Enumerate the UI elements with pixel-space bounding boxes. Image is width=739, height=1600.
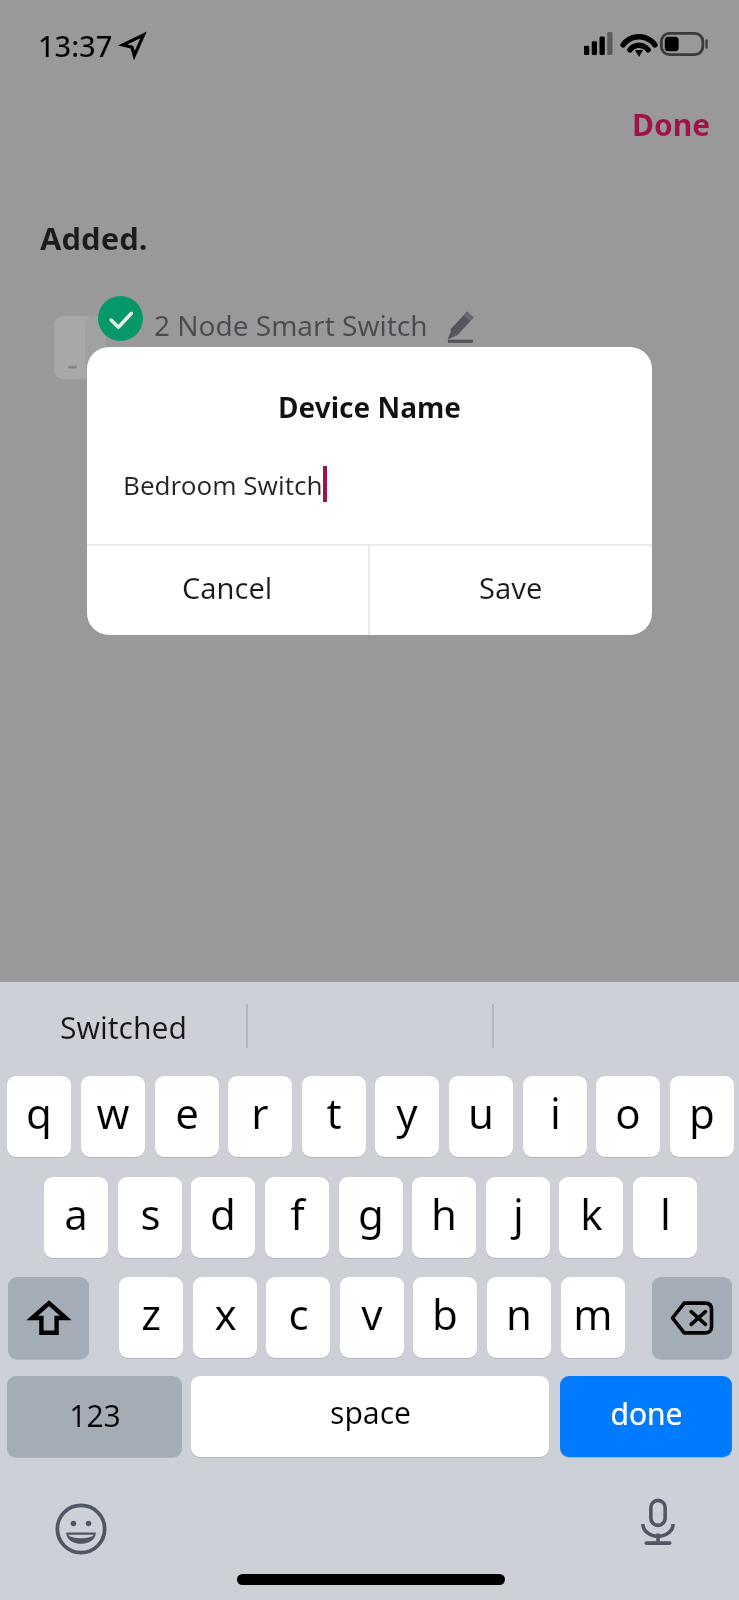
- staticText: q: [26, 1084, 52, 1141]
- staticText: 13:37: [38, 26, 113, 65]
- staticText: r: [251, 1084, 269, 1141]
- staticText: k: [580, 1185, 603, 1242]
- button[interactable]: x: [193, 1277, 257, 1358]
- staticText: e: [175, 1084, 199, 1141]
- staticText: n: [506, 1285, 532, 1342]
- button[interactable]: Edit device name: [437, 304, 483, 348]
- staticText: done: [610, 1393, 683, 1434]
- button[interactable]: m: [561, 1277, 625, 1358]
- button[interactable]: done: [560, 1376, 732, 1457]
- button[interactable]: 123: [7, 1376, 182, 1457]
- button[interactable]: Cancel: [87, 546, 368, 635]
- staticText: m: [573, 1285, 613, 1342]
- staticText: a: [64, 1185, 88, 1242]
- button[interactable]: t: [302, 1076, 366, 1157]
- button[interactable]: w: [81, 1076, 145, 1157]
- button[interactable]: j: [486, 1177, 550, 1258]
- staticText: c: [288, 1285, 309, 1342]
- staticText: Switched: [60, 1007, 187, 1048]
- button[interactable]: Voice input: [634, 1498, 682, 1546]
- staticText: Cancel: [182, 568, 273, 607]
- button[interactable]: r: [228, 1076, 292, 1157]
- button[interactable]: p: [670, 1076, 734, 1157]
- staticText: g: [358, 1185, 384, 1242]
- staticText: v: [361, 1285, 383, 1342]
- staticText: Device Name: [278, 388, 462, 426]
- staticText: h: [431, 1185, 457, 1242]
- button[interactable]: u: [449, 1076, 513, 1157]
- staticText: Done: [632, 104, 711, 145]
- staticText: o: [615, 1084, 641, 1141]
- staticText: d: [210, 1185, 236, 1242]
- staticText: Bedroom Switch: [123, 467, 323, 502]
- button[interactable]: o: [596, 1076, 660, 1157]
- button[interactable]: y: [375, 1076, 439, 1157]
- button[interactable]: i: [523, 1076, 587, 1157]
- button[interactable]: n: [487, 1277, 551, 1358]
- button[interactable]: f: [265, 1177, 329, 1258]
- button[interactable]: g: [339, 1177, 403, 1258]
- button[interactable]: Shift: [8, 1277, 89, 1359]
- staticText: 123: [69, 1395, 121, 1436]
- staticText: s: [140, 1185, 161, 1242]
- staticText: j: [513, 1185, 524, 1242]
- button[interactable]: s: [118, 1177, 182, 1258]
- staticText: w: [96, 1084, 130, 1141]
- staticText: Save: [479, 568, 543, 607]
- staticText: space: [330, 1392, 411, 1433]
- staticText: 2 Node Smart Switch: [154, 306, 428, 344]
- button[interactable]: b: [413, 1277, 477, 1358]
- staticText: u: [468, 1084, 494, 1141]
- staticText: y: [396, 1084, 418, 1141]
- button[interactable]: q: [7, 1076, 71, 1157]
- button[interactable]: space: [191, 1376, 549, 1457]
- button[interactable]: Save: [370, 546, 652, 635]
- staticText: l: [660, 1185, 671, 1242]
- staticText: i: [550, 1084, 561, 1141]
- button[interactable]: e: [155, 1076, 219, 1157]
- button[interactable]: a: [44, 1177, 108, 1258]
- button[interactable]: h: [412, 1177, 476, 1258]
- staticText: b: [432, 1285, 458, 1342]
- staticText: Added.: [40, 217, 148, 259]
- button[interactable]: Done: [614, 97, 728, 151]
- button[interactable]: Emoji: [55, 1503, 107, 1555]
- staticText: t: [326, 1084, 342, 1141]
- staticText: x: [214, 1285, 237, 1342]
- button[interactable]: k: [559, 1177, 623, 1258]
- button[interactable]: z: [119, 1277, 183, 1358]
- button[interactable]: c: [266, 1277, 330, 1358]
- button[interactable]: d: [191, 1177, 255, 1258]
- button[interactable]: l: [633, 1177, 697, 1258]
- staticText: p: [689, 1084, 715, 1141]
- staticText: f: [290, 1185, 305, 1242]
- button[interactable]: v: [340, 1277, 404, 1358]
- staticText: z: [141, 1285, 161, 1342]
- button[interactable]: Backspace: [652, 1277, 732, 1359]
